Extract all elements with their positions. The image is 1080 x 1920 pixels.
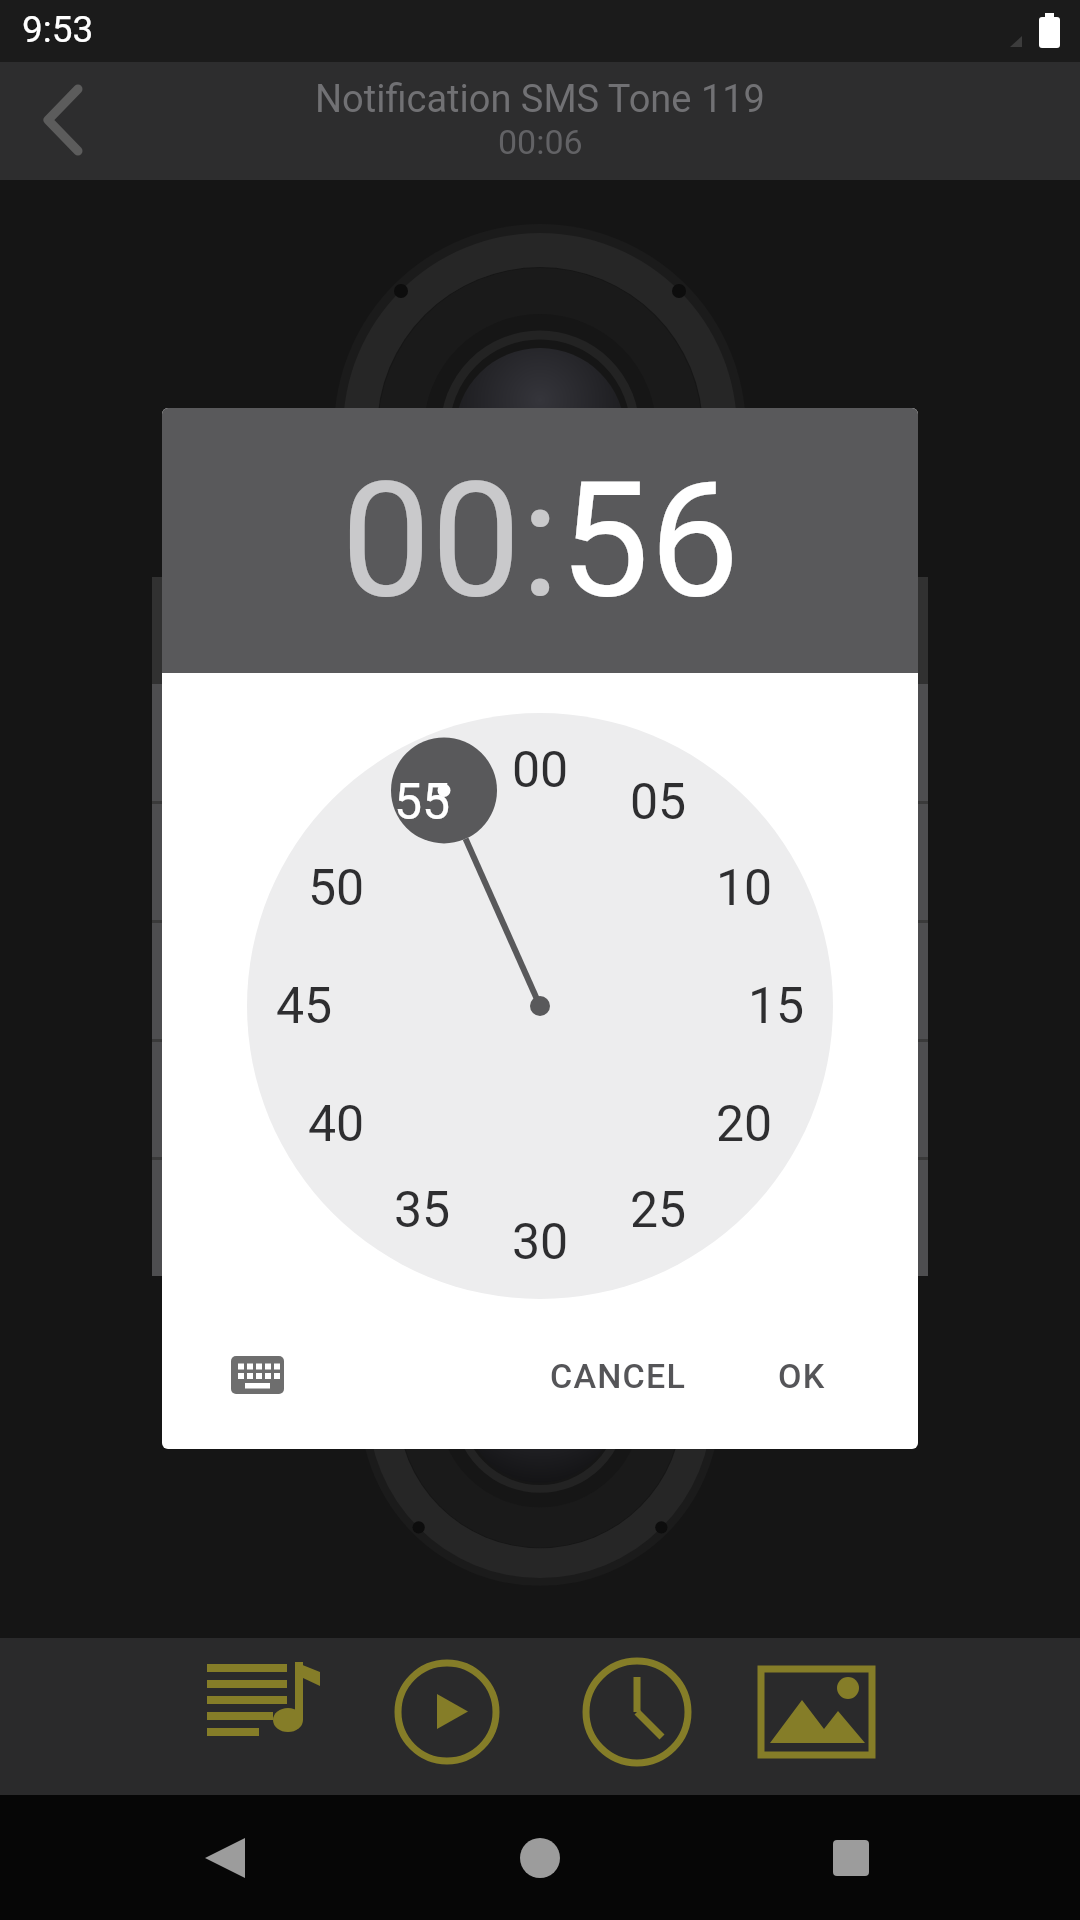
button[interactable] bbox=[195, 1652, 335, 1780]
staticText: 15 bbox=[748, 977, 805, 1036]
staticText: Notification SMS Tone 119 bbox=[315, 77, 765, 122]
staticText: 00:06 bbox=[498, 122, 583, 162]
staticText: 50 bbox=[308, 859, 365, 918]
staticText: 20 bbox=[716, 1095, 773, 1154]
staticText: OK bbox=[778, 1356, 826, 1396]
staticText: 00:56 bbox=[341, 447, 740, 635]
button[interactable] bbox=[14, 72, 114, 170]
staticText: 35 bbox=[394, 1181, 451, 1240]
button[interactable]: OK bbox=[732, 1336, 872, 1416]
button[interactable] bbox=[217, 1336, 297, 1414]
button[interactable] bbox=[806, 1813, 896, 1903]
button[interactable] bbox=[495, 1813, 585, 1903]
staticText: 25 bbox=[630, 1181, 687, 1240]
staticText: CANCEL bbox=[550, 1356, 687, 1396]
staticText: 10 bbox=[716, 859, 773, 918]
button[interactable] bbox=[392, 1657, 502, 1767]
staticText: 40 bbox=[308, 1095, 365, 1154]
staticText: 45 bbox=[276, 977, 333, 1036]
staticText: 55 bbox=[394, 773, 451, 832]
button[interactable] bbox=[582, 1657, 692, 1767]
staticText: 00 bbox=[512, 741, 569, 800]
staticText: 05 bbox=[630, 773, 687, 832]
button[interactable] bbox=[180, 1813, 270, 1903]
button[interactable]: CANCEL bbox=[508, 1336, 728, 1416]
button[interactable] bbox=[758, 1662, 878, 1762]
staticText: 9:53 bbox=[22, 8, 94, 51]
staticText: 30 bbox=[512, 1213, 569, 1272]
